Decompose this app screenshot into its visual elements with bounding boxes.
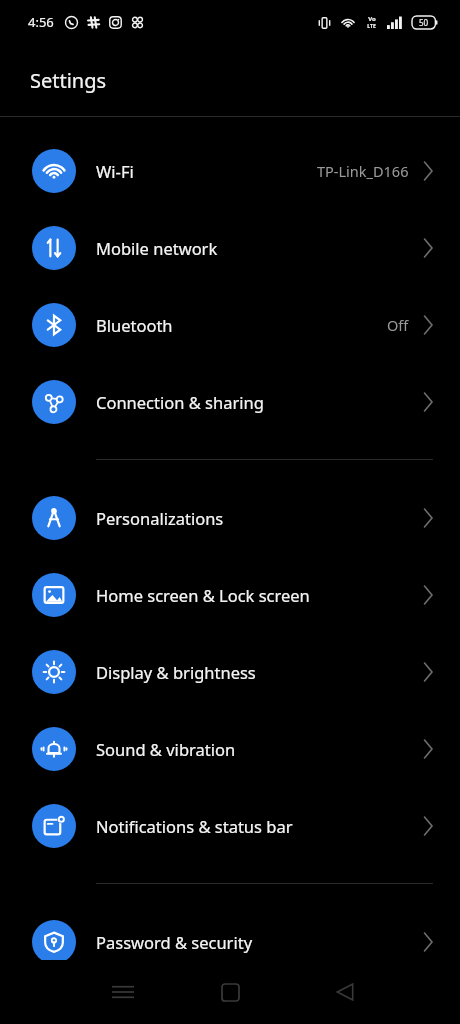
staticText: LTE: [367, 23, 376, 30]
staticText: Home screen & Lock screen: [96, 584, 310, 606]
button[interactable]: Notifications & status bar: [0, 787, 460, 864]
button[interactable]: Password & security: [0, 903, 460, 980]
button[interactable]: Personalizations: [0, 479, 460, 556]
staticText: Wi-Fi: [96, 160, 134, 182]
staticText: Off: [387, 315, 409, 335]
staticText: Bluetooth: [96, 314, 173, 336]
button[interactable]: Home: [207, 969, 253, 1015]
staticText: 50: [419, 17, 429, 28]
button[interactable]: Mobile network: [0, 209, 460, 286]
button[interactable]: Display & brightness: [0, 633, 460, 710]
staticText: 4:56: [28, 13, 54, 31]
button[interactable]: Back: [322, 969, 368, 1015]
staticText: Mobile network: [96, 237, 218, 259]
button[interactable]: Bluetooth: [0, 286, 460, 363]
staticText: Display & brightness: [96, 661, 256, 683]
staticText: Personalizations: [96, 507, 224, 529]
staticText: Notifications & status bar: [96, 815, 293, 837]
button[interactable]: Connection & sharing: [0, 363, 460, 440]
button[interactable]: Home screen & Lock screen: [0, 556, 460, 633]
staticText: Connection & sharing: [96, 391, 264, 413]
staticText: Password & security: [96, 931, 253, 953]
staticText: Sound & vibration: [96, 738, 236, 760]
button[interactable]: Recent apps: [100, 969, 146, 1015]
staticText: Settings: [30, 67, 107, 94]
staticText: TP-Link_D166: [317, 161, 409, 181]
button[interactable]: Sound & vibration: [0, 710, 460, 787]
staticText: Vo: [368, 15, 376, 23]
button[interactable]: Wi-Fi: [0, 132, 460, 209]
